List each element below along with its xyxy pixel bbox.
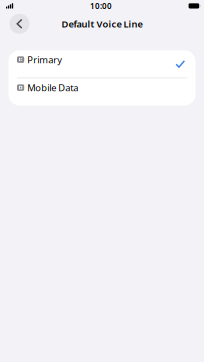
button[interactable]: Mobile Data — [8, 78, 195, 105]
button[interactable]: Primary — [8, 50, 195, 77]
staticText: 10:00 — [90, 1, 112, 11]
staticText: Primary — [27, 53, 62, 66]
staticText: Mobile Data — [27, 81, 78, 94]
button[interactable]: Back — [7, 12, 31, 36]
staticText: Default Voice Line — [61, 18, 142, 30]
